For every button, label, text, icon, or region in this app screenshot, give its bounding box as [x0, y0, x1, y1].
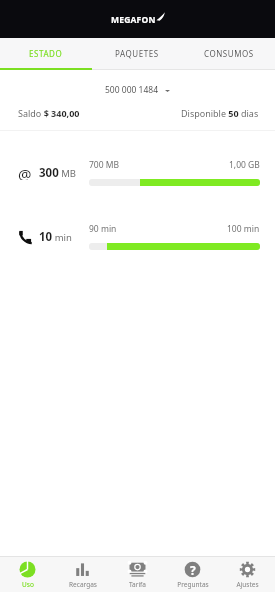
- staticText: PAQUETES: [115, 48, 159, 59]
- staticText: ?: [190, 562, 196, 578]
- staticText: Disponible 50 dias: [181, 107, 259, 119]
- button[interactable]: Recargas: [55, 557, 110, 592]
- staticText: 500 000 1484: [105, 84, 159, 96]
- staticText: Ajustes: [236, 580, 259, 589]
- staticText: Saldo $ 340,00: [18, 107, 80, 119]
- staticText: 1,00 GB: [229, 159, 260, 171]
- staticText: ESTADO: [29, 48, 63, 59]
- button[interactable]: Preguntas: [165, 557, 220, 592]
- staticText: Recargas: [69, 580, 97, 589]
- staticText: 100 min: [227, 223, 260, 235]
- button[interactable]: 500 000 1484: [97, 81, 178, 99]
- staticText: Preguntas: [177, 580, 209, 589]
- button[interactable]: Ajustes: [220, 557, 275, 592]
- staticText: @: [18, 164, 32, 180]
- staticText: 300 MB: [39, 165, 76, 181]
- staticText: CONSUMOS: [204, 48, 254, 59]
- button[interactable]: CONSUMOS: [183, 38, 275, 70]
- staticText: 10 min: [39, 229, 72, 245]
- staticText: Uso: [22, 580, 34, 589]
- button[interactable]: Uso: [0, 557, 55, 592]
- staticText: Tarifa: [129, 580, 146, 589]
- button[interactable]: ESTADO: [0, 38, 91, 70]
- button[interactable]: Tarifa: [110, 557, 165, 592]
- button[interactable]: PAQUETES: [91, 38, 183, 70]
- staticText: MEGAFON: [111, 14, 156, 26]
- staticText: 90 min: [89, 223, 117, 235]
- staticText: 700 MB: [89, 159, 120, 171]
